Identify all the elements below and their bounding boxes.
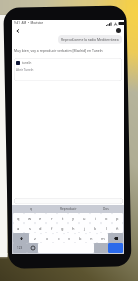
staticText: h	[72, 226, 75, 231]
staticText: Reproducir	[60, 207, 77, 211]
staticText: Abrir Tuneln	[16, 68, 34, 72]
button[interactable]: o	[101, 213, 112, 223]
button[interactable]: w	[24, 213, 35, 223]
button[interactable]: Return	[108, 243, 123, 253]
staticText: ñ	[116, 226, 119, 231]
button[interactable]: d	[35, 223, 46, 233]
button[interactable]: m	[97, 233, 108, 243]
staticText: d	[39, 226, 42, 231]
staticText: t	[62, 216, 64, 221]
staticText: u	[83, 216, 86, 221]
staticText: v	[68, 236, 71, 241]
button[interactable]: Dos	[87, 205, 124, 213]
staticText: a	[17, 226, 20, 231]
staticText: r	[51, 216, 53, 221]
staticText: f	[51, 226, 53, 231]
button[interactable]: t	[57, 213, 68, 223]
staticText: c	[58, 236, 60, 241]
staticText: 123	[17, 246, 23, 250]
staticText: e	[39, 216, 42, 221]
button[interactable]: y	[68, 213, 79, 223]
staticText: q	[30, 207, 32, 211]
button[interactable]: i	[90, 213, 101, 223]
staticText: tuneIn	[22, 61, 32, 65]
button[interactable]: h	[68, 223, 79, 233]
staticText: m	[101, 236, 105, 241]
button[interactable]: Backspace	[108, 233, 123, 243]
button[interactable]: x	[41, 233, 53, 243]
button[interactable]: r	[46, 213, 57, 223]
button[interactable]: v	[64, 233, 75, 243]
button[interactable]: a	[13, 223, 24, 233]
staticText: 9:41 AM • Movistar	[14, 21, 44, 25]
staticText: s	[29, 226, 31, 231]
staticText: Dos	[103, 207, 109, 211]
button[interactable]: Reproducir	[50, 205, 87, 213]
button[interactable]: z	[29, 233, 41, 243]
button[interactable]: Numbers	[13, 243, 27, 253]
staticText: y	[72, 216, 75, 221]
staticText: z	[34, 236, 36, 241]
button[interactable]: n	[86, 233, 97, 243]
button[interactable]: Reprodúceme la radio Mediterránea	[58, 35, 122, 44]
staticText: j	[84, 226, 86, 231]
button[interactable]: b	[75, 233, 86, 243]
staticText: q	[17, 216, 20, 221]
button[interactable]: j	[79, 223, 90, 233]
button[interactable]: ñ	[112, 223, 123, 233]
staticText: b	[79, 236, 82, 241]
staticText: x	[46, 236, 49, 241]
button[interactable]: k	[90, 223, 101, 233]
staticText: Reprodúceme la radio Mediterránea	[61, 37, 119, 42]
button[interactable]: q	[12, 205, 50, 213]
button[interactable]: l	[101, 223, 112, 233]
button[interactable]: s	[24, 223, 35, 233]
button[interactable]: Emoji	[27, 243, 38, 253]
button[interactable]: u	[79, 213, 90, 223]
staticText: l	[106, 226, 108, 231]
staticText: p	[116, 216, 119, 221]
button[interactable]: c	[53, 233, 64, 243]
button[interactable]: tuneIn	[14, 58, 122, 81]
button[interactable]: e	[35, 213, 46, 223]
staticText: o	[105, 216, 108, 221]
staticText: Muy bien, voy a reproducir verbatim [Mad…	[14, 48, 103, 53]
staticText: i	[95, 216, 97, 221]
staticText: g	[61, 226, 64, 231]
button[interactable]: Profile	[114, 26, 122, 34]
button[interactable]: g	[57, 223, 68, 233]
staticText: k	[94, 226, 97, 231]
button[interactable]: p	[112, 213, 123, 223]
button[interactable]: Back	[14, 27, 21, 34]
staticText: w	[28, 216, 32, 221]
button[interactable]: f	[46, 223, 57, 233]
button[interactable]: q	[13, 213, 24, 223]
button[interactable]: Shift	[13, 233, 29, 243]
staticText: n	[90, 236, 93, 241]
button[interactable]	[14, 198, 123, 204]
